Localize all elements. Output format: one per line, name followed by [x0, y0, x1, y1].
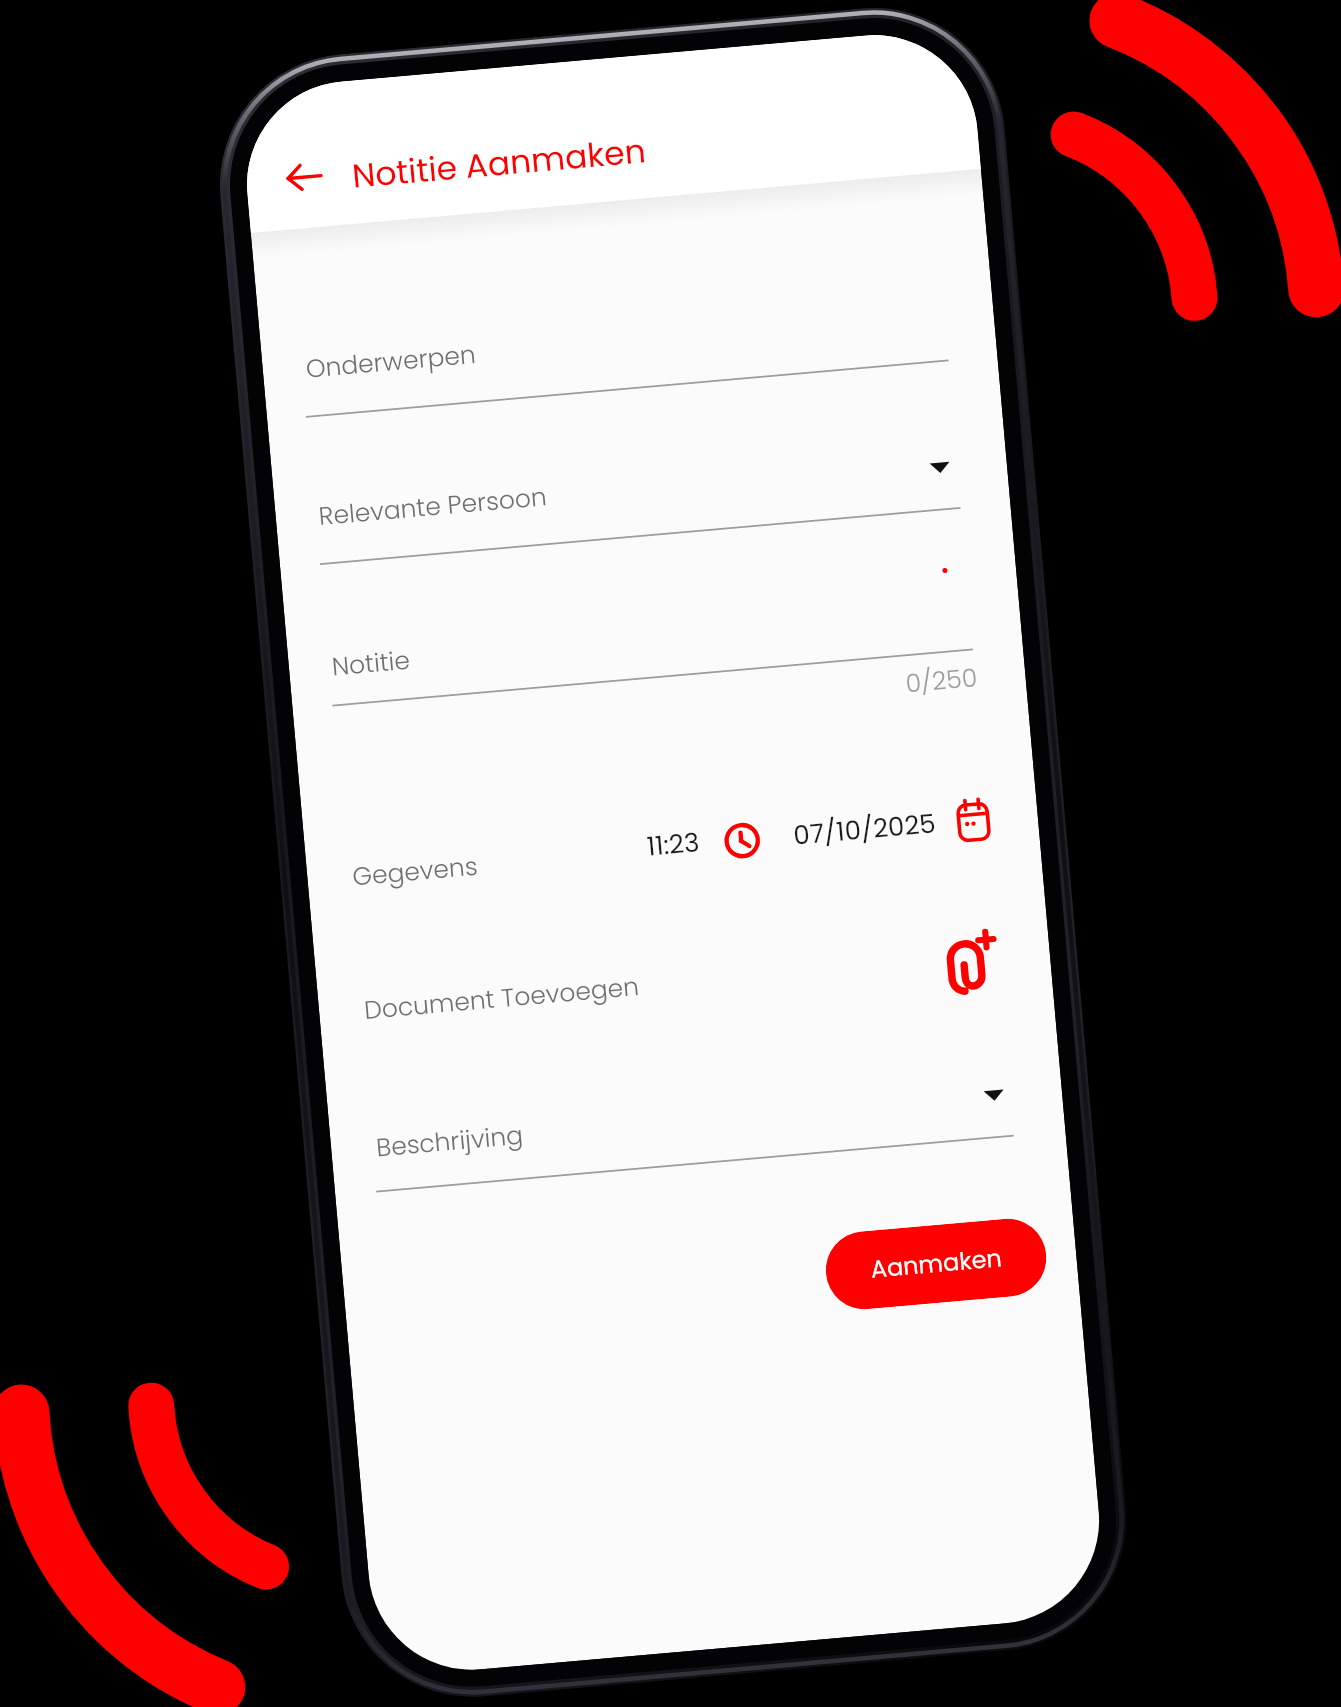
- staticText: Document Toevoegen: [363, 969, 641, 1028]
- button[interactable]: Pick time: [718, 816, 767, 865]
- staticText: Notitie: [330, 643, 412, 684]
- staticText: Notitie Aanmaken: [350, 127, 648, 199]
- button[interactable]: Pick date: [953, 793, 995, 846]
- button[interactable]: Back: [282, 148, 342, 205]
- button[interactable]: Aanmaken: [823, 1215, 1050, 1312]
- staticText: Gegevens: [351, 849, 480, 894]
- staticText: 11:23: [645, 824, 701, 865]
- staticText: Beschrijving: [375, 1118, 525, 1165]
- button[interactable]: Expand: [970, 1075, 1017, 1115]
- button[interactable]: Expand: [916, 448, 963, 487]
- staticText: Onderwerpen: [304, 337, 478, 387]
- button[interactable]: Attach document: [945, 927, 1002, 1000]
- staticText: 07/10/2025: [792, 805, 938, 854]
- staticText: 0/250: [904, 660, 979, 701]
- staticText: Relevante Persoon: [317, 479, 548, 534]
- staticText: Aanmaken: [869, 1241, 1004, 1287]
